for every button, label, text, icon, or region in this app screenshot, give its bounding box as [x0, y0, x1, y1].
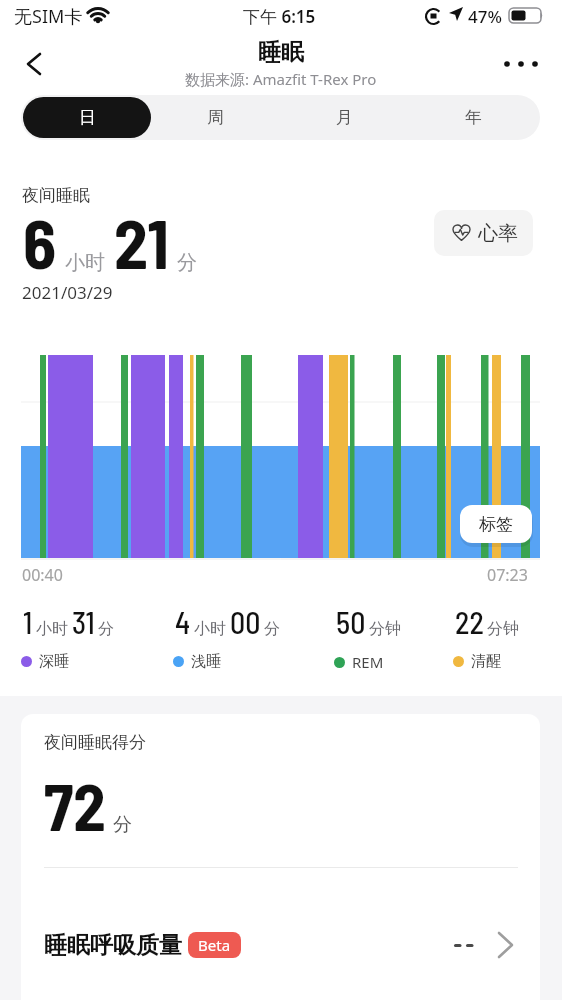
staticText: 睡眠呼吸质量 — [44, 931, 182, 960]
staticText: 00:40 — [22, 564, 63, 586]
button[interactable] — [496, 46, 546, 82]
staticText: 50 — [336, 604, 366, 640]
button[interactable]: 年 — [409, 97, 538, 138]
staticText: 深睡 — [39, 652, 69, 671]
staticText: 小时 — [194, 619, 226, 639]
staticText: 分 — [177, 250, 197, 275]
staticText: 分 — [98, 619, 114, 639]
staticText: 浅睡 — [191, 652, 221, 671]
staticText: 4 — [175, 604, 191, 640]
staticText: 年 — [465, 107, 482, 128]
staticText: 分 — [113, 813, 132, 837]
staticText: 清醒 — [471, 652, 501, 671]
button[interactable]: 睡眠呼吸质量 — [21, 900, 540, 990]
staticText: 睡眠 — [258, 38, 304, 67]
staticText: 1 — [23, 604, 33, 640]
staticText: 下午 6:15 — [243, 5, 316, 28]
staticText: 数据来源: Amazfit T-Rex Pro — [185, 69, 377, 89]
button[interactable]: 日 — [23, 97, 151, 138]
staticText: 分钟 — [369, 619, 401, 639]
staticText: 日 — [79, 107, 96, 128]
button[interactable]: 心率 — [434, 210, 533, 256]
staticText: 心率 — [478, 221, 518, 246]
staticText: 31 — [72, 604, 95, 640]
staticText: 夜间睡眠 — [22, 185, 90, 206]
staticText: 47% — [468, 5, 502, 28]
staticText: 72 — [44, 766, 106, 844]
staticText: 21 — [114, 201, 169, 283]
staticText: 22 — [455, 604, 484, 640]
staticText: 标签 — [479, 514, 513, 535]
staticText: REM — [352, 652, 384, 672]
staticText: 夜间睡眠得分 — [44, 732, 146, 753]
staticText: 分 — [264, 619, 280, 639]
staticText: 周 — [207, 107, 224, 128]
staticText: 分钟 — [487, 619, 519, 639]
staticText: 2021/03/29 — [22, 281, 113, 304]
staticText: 小时 — [36, 619, 68, 639]
button[interactable]: 月 — [280, 97, 409, 138]
button[interactable]: 周 — [151, 97, 280, 138]
button[interactable] — [16, 44, 52, 84]
staticText: 小时 — [65, 250, 105, 275]
button[interactable]: 标签 — [460, 505, 532, 543]
staticText: 月 — [336, 107, 353, 128]
staticText: 6 — [23, 201, 57, 283]
staticText: Beta — [198, 935, 231, 955]
staticText: 无SIM卡 — [14, 4, 83, 29]
staticText: 00 — [230, 604, 261, 640]
staticText: 07:23 — [487, 564, 528, 586]
